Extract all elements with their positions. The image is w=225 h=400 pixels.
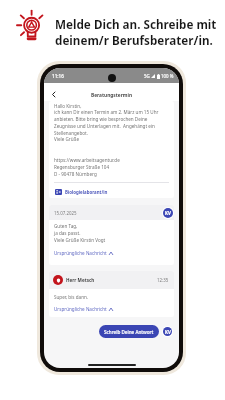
staticText: 15.07.2025 bbox=[54, 210, 77, 216]
staticText: Schreib Deine Antwort bbox=[104, 329, 154, 335]
staticText: Melde Dich an. Schreibe mit deinem/r Ber… bbox=[55, 16, 217, 48]
staticText: 100 % bbox=[161, 73, 174, 79]
staticText: Ursprüngliche Nachricht bbox=[54, 306, 107, 312]
button[interactable]: Schreib Deine Antwort bbox=[99, 325, 159, 338]
staticText: Ursprüngliche Nachricht bbox=[54, 250, 107, 256]
staticText: Hallo Kirstin, bbox=[54, 103, 82, 109]
staticText: Beratungstermin bbox=[91, 92, 133, 99]
button[interactable]: Herr Metsch bbox=[49, 271, 174, 317]
staticText: Herr Metsch bbox=[66, 277, 95, 283]
staticText: https://www.arbeitsagentur.de Regensburg… bbox=[54, 157, 120, 177]
staticText: 5G bbox=[144, 73, 150, 79]
staticText: KV bbox=[165, 210, 171, 216]
staticText: Viele Grüße bbox=[54, 136, 80, 142]
button[interactable]: Biologielaborant/in bbox=[55, 189, 108, 195]
staticText: ich kann Dir einen Termin am 2. März um … bbox=[54, 109, 159, 136]
button[interactable]: Zurück bbox=[47, 88, 60, 101]
staticText: KV bbox=[165, 329, 171, 335]
staticText: 11:16 bbox=[52, 73, 64, 79]
staticText: Super, bis dann. bbox=[54, 294, 89, 300]
button[interactable]: Ursprüngliche Nachricht bbox=[54, 250, 113, 256]
button[interactable]: Ursprüngliche Nachricht bbox=[54, 306, 113, 312]
staticText: Guten Tag, ja das passt. Viele Grüße Kir… bbox=[54, 223, 106, 243]
button[interactable]: 15.07.2025 bbox=[49, 205, 174, 265]
staticText: 12:35 bbox=[157, 277, 169, 283]
staticText: Biologielaborant/in bbox=[65, 189, 108, 195]
button[interactable]: Hallo Kirstin, bbox=[49, 101, 174, 198]
